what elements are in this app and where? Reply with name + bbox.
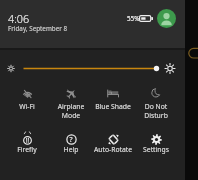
button[interactable]: Airplane Mode bbox=[48, 82, 94, 114]
staticText: 4:06 bbox=[8, 11, 30, 26]
staticText: Help bbox=[48, 145, 94, 154]
button[interactable]: Auto-Rotate bbox=[90, 128, 136, 160]
staticText: Blue Shade bbox=[90, 102, 136, 111]
button[interactable]: Blue Shade bbox=[90, 82, 136, 114]
button[interactable]: User profile bbox=[157, 9, 176, 28]
button[interactable]: Clock and date bbox=[0, 0, 185, 48]
staticText: Auto-Rotate bbox=[90, 145, 136, 154]
staticText: Airplane Mode bbox=[48, 102, 94, 120]
staticText: Settings bbox=[133, 145, 179, 154]
button[interactable]: Do Not Disturb bbox=[133, 82, 179, 114]
staticText: 55% bbox=[127, 14, 140, 23]
staticText: Friday, September 8 bbox=[8, 24, 68, 33]
button[interactable]: Brightness bbox=[0, 58, 185, 79]
button[interactable]: Firefly bbox=[4, 128, 50, 160]
staticText: Wi-Fi bbox=[4, 102, 50, 111]
button[interactable]: Wi-Fi bbox=[4, 82, 50, 114]
staticText: ? bbox=[48, 135, 94, 145]
staticText: Firefly bbox=[4, 145, 50, 154]
button[interactable]: Settings bbox=[133, 128, 179, 160]
button[interactable]: ? bbox=[48, 128, 94, 160]
staticText: Do Not Disturb bbox=[133, 102, 179, 120]
